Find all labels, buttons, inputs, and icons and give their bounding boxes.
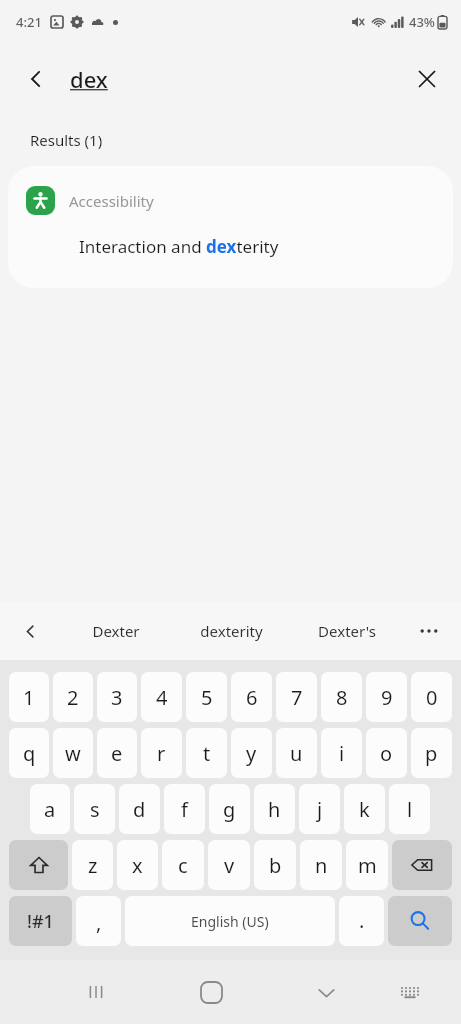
- staticText: n: [315, 852, 328, 879]
- staticText: .: [359, 907, 365, 934]
- button[interactable]: Previous suggestions: [10, 611, 50, 651]
- staticText: o: [380, 740, 393, 767]
- button[interactable]: n: [300, 840, 342, 890]
- button[interactable]: y: [231, 728, 272, 778]
- button[interactable]: s: [74, 784, 115, 834]
- button[interactable]: .: [339, 896, 384, 946]
- staticText: Results (1): [30, 130, 103, 150]
- button[interactable]: 1: [9, 672, 49, 722]
- button[interactable]: 4: [141, 672, 182, 722]
- button[interactable]: 8: [321, 672, 362, 722]
- staticText: x: [132, 852, 143, 879]
- staticText: 5: [201, 684, 213, 711]
- button[interactable]: p: [411, 728, 452, 778]
- staticText: p: [425, 740, 438, 767]
- button[interactable]: h: [254, 784, 295, 834]
- button[interactable]: 3: [97, 672, 137, 722]
- staticText: t: [203, 740, 211, 767]
- button[interactable]: Dexter: [58, 602, 173, 660]
- button[interactable]: u: [276, 728, 317, 778]
- button[interactable]: t: [186, 728, 227, 778]
- button[interactable]: Dexter's: [289, 602, 405, 660]
- button[interactable]: English (US): [125, 896, 335, 946]
- button[interactable]: Home: [185, 966, 237, 1018]
- staticText: dex: [70, 64, 108, 94]
- button[interactable]: e: [97, 728, 137, 778]
- staticText: Accessibility: [69, 191, 154, 211]
- button[interactable]: 6: [231, 672, 272, 722]
- staticText: s: [90, 796, 100, 823]
- staticText: 3: [111, 684, 123, 711]
- staticText: l: [407, 796, 413, 823]
- button[interactable]: 5: [186, 672, 227, 722]
- button[interactable]: k: [344, 784, 385, 834]
- staticText: English (US): [191, 912, 269, 931]
- button[interactable]: dex: [70, 64, 108, 94]
- button[interactable]: r: [141, 728, 182, 778]
- staticText: e: [111, 740, 123, 767]
- staticText: r: [157, 740, 166, 767]
- staticText: k: [359, 796, 370, 823]
- staticText: 43%: [409, 13, 435, 31]
- staticText: Dexter: [92, 621, 140, 641]
- button[interactable]: Search: [388, 896, 452, 946]
- button[interactable]: g: [209, 784, 250, 834]
- button[interactable]: o: [366, 728, 407, 778]
- staticText: m: [358, 852, 377, 879]
- button[interactable]: m: [346, 840, 388, 890]
- button[interactable]: x: [117, 840, 158, 890]
- staticText: y: [246, 740, 257, 767]
- button[interactable]: Accessibility: [8, 166, 453, 288]
- staticText: z: [88, 852, 98, 879]
- button[interactable]: Recent apps: [70, 966, 122, 1018]
- staticText: d: [133, 796, 146, 823]
- staticText: 8: [336, 684, 348, 711]
- staticText: q: [23, 740, 36, 767]
- button[interactable]: Change keyboard: [387, 969, 433, 1015]
- staticText: Dexter's: [318, 621, 376, 641]
- button[interactable]: ,: [76, 896, 121, 946]
- staticText: 4:21: [16, 13, 42, 31]
- button[interactable]: Shift: [9, 840, 68, 890]
- staticText: c: [178, 852, 188, 879]
- button[interactable]: Clear search: [405, 57, 449, 101]
- button[interactable]: w: [53, 728, 93, 778]
- staticText: Interaction and dexterity: [79, 235, 279, 258]
- staticText: b: [269, 852, 282, 879]
- button[interactable]: l: [389, 784, 430, 834]
- staticText: 1: [23, 684, 35, 711]
- button[interactable]: Back: [14, 57, 58, 101]
- button[interactable]: a: [30, 784, 70, 834]
- staticText: 4: [156, 684, 168, 711]
- button[interactable]: c: [162, 840, 204, 890]
- button[interactable]: 7: [276, 672, 317, 722]
- button[interactable]: b: [254, 840, 296, 890]
- staticText: a: [44, 796, 56, 823]
- staticText: v: [224, 852, 235, 879]
- button[interactable]: q: [9, 728, 49, 778]
- staticText: 0: [426, 684, 438, 711]
- button[interactable]: More options: [409, 611, 449, 651]
- button[interactable]: dexterity: [173, 602, 289, 660]
- button[interactable]: 2: [53, 672, 93, 722]
- staticText: g: [223, 796, 236, 823]
- button[interactable]: Hide keyboard: [300, 966, 352, 1018]
- button[interactable]: i: [321, 728, 362, 778]
- button[interactable]: z: [72, 840, 113, 890]
- staticText: u: [290, 740, 303, 767]
- staticText: j: [317, 796, 323, 823]
- staticText: !#1: [27, 909, 54, 934]
- button[interactable]: f: [164, 784, 205, 834]
- button[interactable]: !#1: [9, 896, 72, 946]
- button[interactable]: 9: [366, 672, 407, 722]
- staticText: i: [339, 740, 345, 767]
- staticText: h: [268, 796, 281, 823]
- staticText: f: [181, 796, 188, 823]
- button[interactable]: v: [208, 840, 250, 890]
- staticText: dexterity: [200, 621, 263, 641]
- button[interactable]: 0: [411, 672, 452, 722]
- staticText: 7: [291, 684, 303, 711]
- button[interactable]: Backspace: [392, 840, 452, 890]
- button[interactable]: j: [299, 784, 340, 834]
- button[interactable]: d: [119, 784, 160, 834]
